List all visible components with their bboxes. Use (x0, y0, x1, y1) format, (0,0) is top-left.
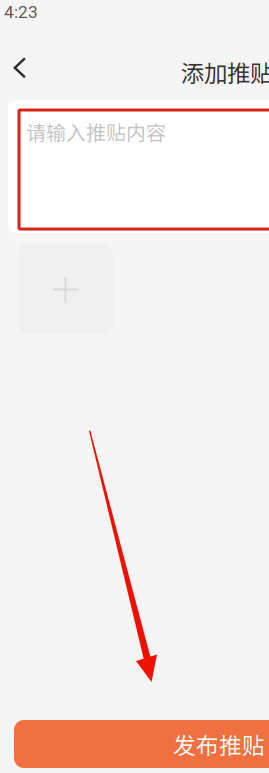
staticText: 添加推贴 (181, 55, 269, 89)
staticText: 请输入推贴内容 (26, 117, 166, 146)
button[interactable]: Back (0, 46, 42, 90)
button[interactable]: 发布推贴 (14, 720, 269, 768)
staticText: 发布推贴 (173, 728, 265, 760)
staticText: 4:23 (4, 2, 38, 22)
